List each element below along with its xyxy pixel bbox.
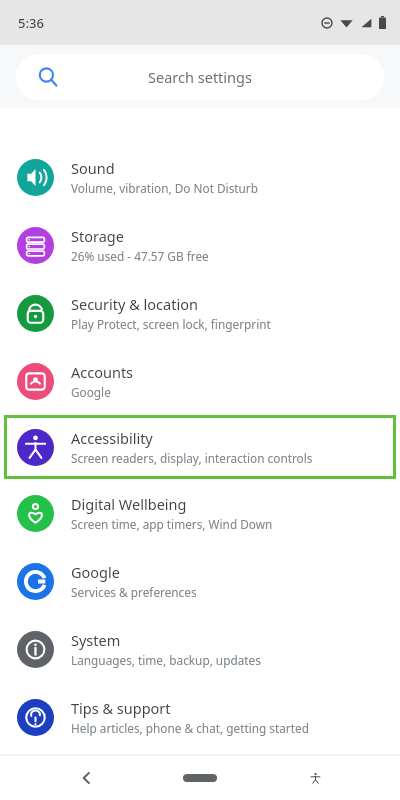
staticText: Security & location [71,294,198,314]
staticText: Help articles, phone & chat, getting sta… [71,720,309,736]
button[interactable]: System [0,615,400,683]
button[interactable]: Accounts [0,347,400,415]
staticText: Search settings [58,67,342,87]
button[interactable]: Back [70,761,104,795]
staticText: Accounts [71,362,134,382]
button[interactable]: Digital Wellbeing [0,479,400,547]
staticText: Google [71,384,111,400]
staticText: Services & preferences [71,584,197,600]
staticText: Digital Wellbeing [71,494,187,514]
staticText: Screen time, app timers, Wind Down [71,516,273,532]
staticText: Storage [71,226,124,246]
staticText: 5:36 [18,14,44,32]
button[interactable]: Accessibility [4,415,396,479]
staticText: System [71,630,121,650]
button[interactable]: Sound [0,143,400,211]
button[interactable]: Accessibility menu [298,761,332,795]
button[interactable]: Tips & support [0,683,400,751]
staticText: Volume, vibration, Do Not Disturb [71,180,258,196]
button[interactable]: Home [170,763,230,793]
staticText: Google [71,562,120,582]
staticText: Sound [71,158,115,178]
staticText: Accessibility [71,428,153,448]
button[interactable]: Storage [0,211,400,279]
button[interactable]: Search settings [16,54,384,100]
staticText: 26% used - 47.57 GB free [71,248,209,264]
staticText: Play Protect, screen lock, fingerprint [71,316,271,332]
staticText: Languages, time, backup, updates [71,652,261,668]
button[interactable]: Google [0,547,400,615]
staticText: Tips & support [71,698,171,718]
button[interactable]: Security & location [0,279,400,347]
staticText: Screen readers, display, interaction con… [71,450,313,466]
